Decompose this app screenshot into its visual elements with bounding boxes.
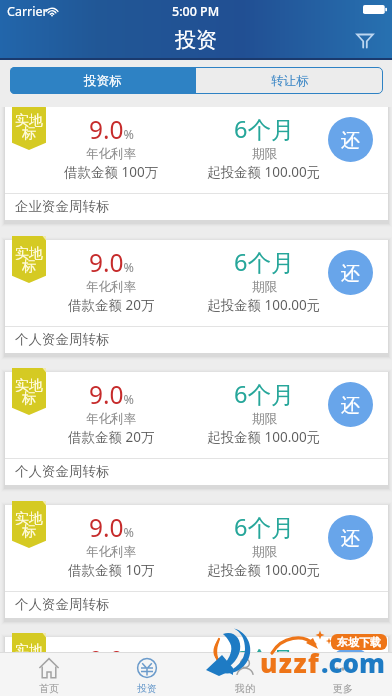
staticText: 实地 [15, 245, 43, 263]
button[interactable]: 还 [328, 382, 373, 427]
staticText: 个人资金周转标 [15, 331, 110, 348]
staticText: 还 [341, 262, 360, 286]
staticText: 借款金额 20万 [68, 296, 155, 314]
staticText: 6个月 [234, 378, 295, 410]
staticText: 年化利率 [86, 544, 136, 560]
staticText: 投资标 [84, 73, 122, 89]
staticText: 年化利率 [86, 146, 136, 162]
staticText: 首页 [39, 682, 59, 695]
staticText: 9.0% [89, 511, 134, 544]
button[interactable]: 转让标 [196, 67, 383, 94]
button[interactable]: 9.0% [5, 372, 388, 485]
staticText: 标 [22, 523, 36, 541]
button[interactable]: Filter [346, 21, 384, 59]
staticText: 6个月 [234, 246, 295, 278]
staticText: 更多 [333, 682, 353, 695]
button[interactable]: 9.0% [5, 505, 388, 618]
button[interactable]: 9.0% [5, 107, 388, 220]
staticText: 个人资金周转标 [15, 463, 110, 480]
staticText: 期限 [252, 544, 277, 560]
staticText: uzzf [260, 645, 321, 680]
button[interactable]: 9.0% [5, 240, 388, 353]
staticText: 标 [22, 390, 36, 408]
button[interactable]: 9.0% [5, 637, 388, 696]
staticText: 投资 [175, 27, 217, 53]
staticText: 实地 [15, 510, 43, 528]
staticText: 5:00 PM [172, 3, 220, 20]
staticText: 企业资金周转标 [15, 198, 110, 215]
staticText: 6个月 [234, 511, 295, 543]
staticText: 我的 [235, 682, 255, 695]
staticText: 9.0% [89, 113, 134, 146]
staticText: 投资 [137, 682, 157, 695]
staticText: 6个月 [234, 643, 295, 675]
staticText: 起投金额 100.00元 [207, 561, 321, 579]
staticText: 借款金额 10万 [68, 561, 155, 579]
staticText: 实地 [15, 642, 43, 660]
staticText: 实地 [15, 112, 43, 130]
button[interactable]: 投资标 [10, 67, 196, 94]
staticText: 转让标 [271, 73, 309, 89]
staticText: 9.0% [89, 378, 134, 411]
staticText: 年化利率 [86, 411, 136, 427]
staticText: 6个月 [234, 113, 295, 145]
button[interactable]: 还 [328, 515, 373, 560]
staticText: 9.0% [89, 246, 134, 279]
staticText: 还 [341, 527, 360, 551]
staticText: 期限 [252, 676, 277, 692]
button[interactable]: 我的 [196, 653, 294, 696]
staticText: 还 [341, 659, 360, 683]
staticText: 期限 [252, 146, 277, 162]
staticText: 起投金额 100.00元 [207, 163, 321, 181]
staticText: 实地 [15, 377, 43, 395]
staticText: 起投金额 100.00元 [207, 296, 321, 314]
button[interactable]: 还 [328, 647, 373, 692]
button[interactable]: 还 [328, 250, 373, 295]
staticText: 标 [22, 258, 36, 276]
staticText: 借款金额 100万 [64, 163, 159, 181]
staticText: 还 [341, 394, 360, 418]
button[interactable]: 首页 [0, 653, 98, 696]
staticText: 还 [341, 129, 360, 153]
button[interactable]: 还 [328, 117, 373, 162]
staticText: 标 [22, 125, 36, 143]
staticText: .com [321, 645, 386, 680]
button[interactable]: 投资 [98, 653, 196, 696]
staticText: 借款金额 20万 [68, 428, 155, 446]
staticText: 东坡下载 [337, 635, 381, 649]
staticText: 起投金额 100.00元 [207, 428, 321, 446]
button[interactable]: 更多 [294, 653, 392, 696]
staticText: 期限 [252, 279, 277, 295]
staticText: Carrier [7, 3, 48, 20]
staticText: 9.0% [89, 643, 134, 676]
staticText: 个人资金周转标 [15, 596, 110, 613]
staticText: 期限 [252, 411, 277, 427]
staticText: 年化利率 [86, 279, 136, 295]
